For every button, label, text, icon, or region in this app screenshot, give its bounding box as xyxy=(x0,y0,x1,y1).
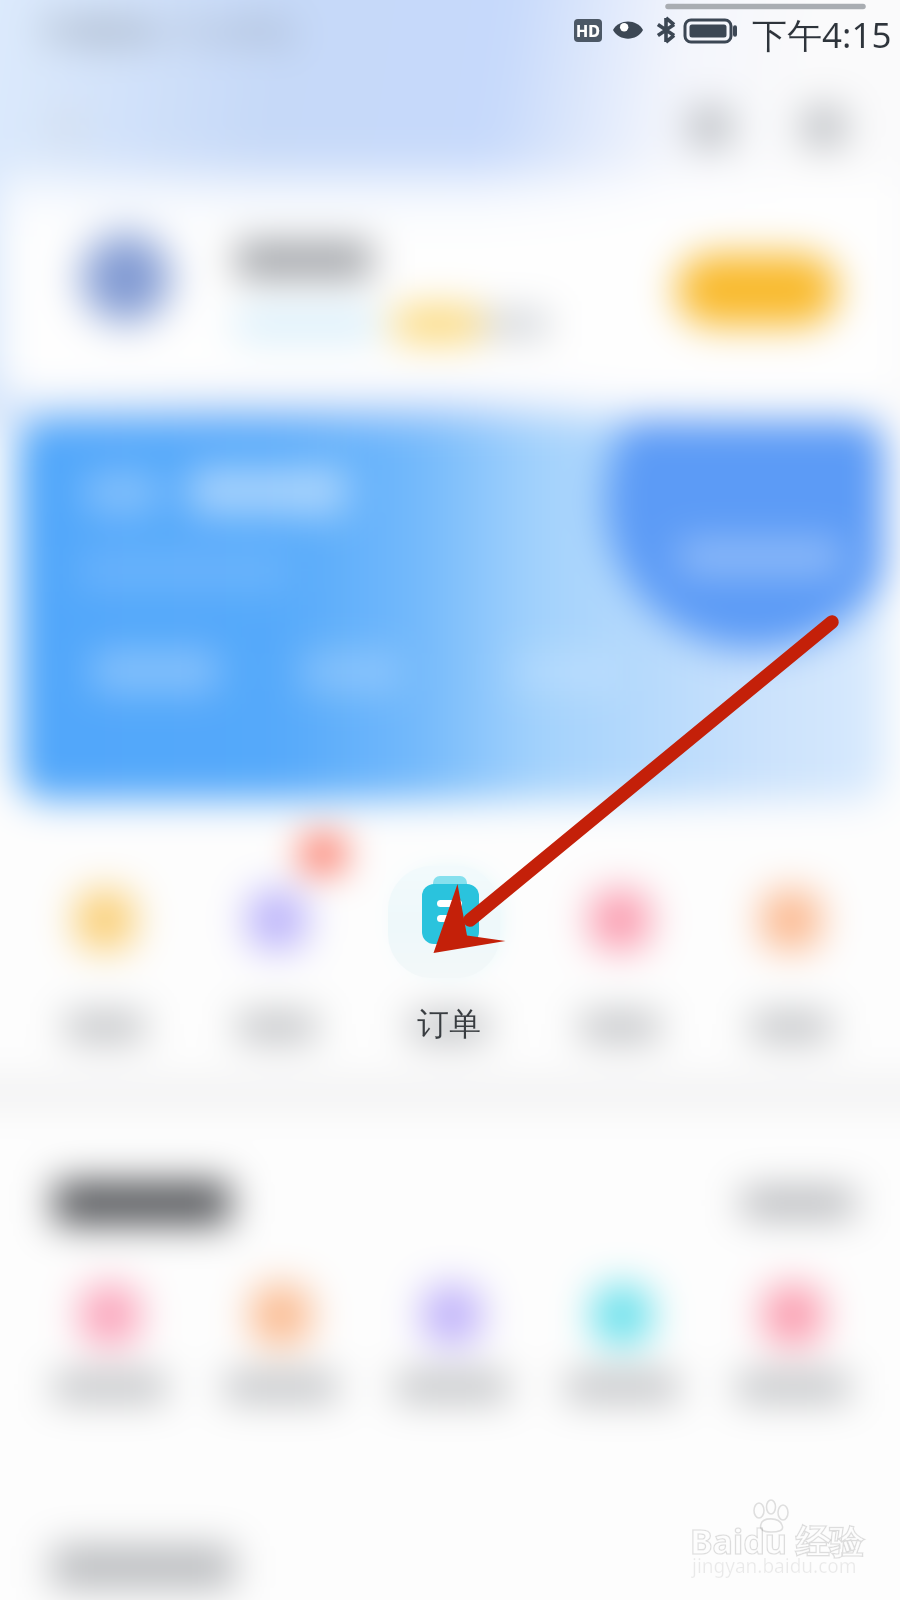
staticText: 中国移动 个人中心 xyxy=(40,10,296,51)
button[interactable] xyxy=(562,876,678,1066)
button[interactable] xyxy=(688,106,732,148)
button[interactable] xyxy=(47,876,163,1066)
button[interactable] xyxy=(394,1271,510,1461)
staticText: HD xyxy=(576,20,600,42)
button[interactable] xyxy=(742,1190,854,1216)
staticText: 下午4:15 xyxy=(752,11,892,59)
button[interactable]: 订单 xyxy=(388,866,500,978)
staticText: jingyan.baidu.com xyxy=(692,1553,857,1579)
button[interactable] xyxy=(735,1271,851,1461)
button[interactable] xyxy=(564,1271,680,1461)
staticText: 订单 xyxy=(369,1004,529,1044)
staticText: Baidu 经验 xyxy=(690,1518,864,1564)
button[interactable] xyxy=(391,876,507,1066)
button[interactable] xyxy=(733,876,849,1066)
button[interactable] xyxy=(52,1271,168,1461)
button[interactable] xyxy=(223,1271,339,1461)
button[interactable] xyxy=(219,876,335,1066)
button[interactable] xyxy=(802,106,846,148)
button[interactable] xyxy=(676,254,838,326)
button[interactable] xyxy=(18,420,885,800)
